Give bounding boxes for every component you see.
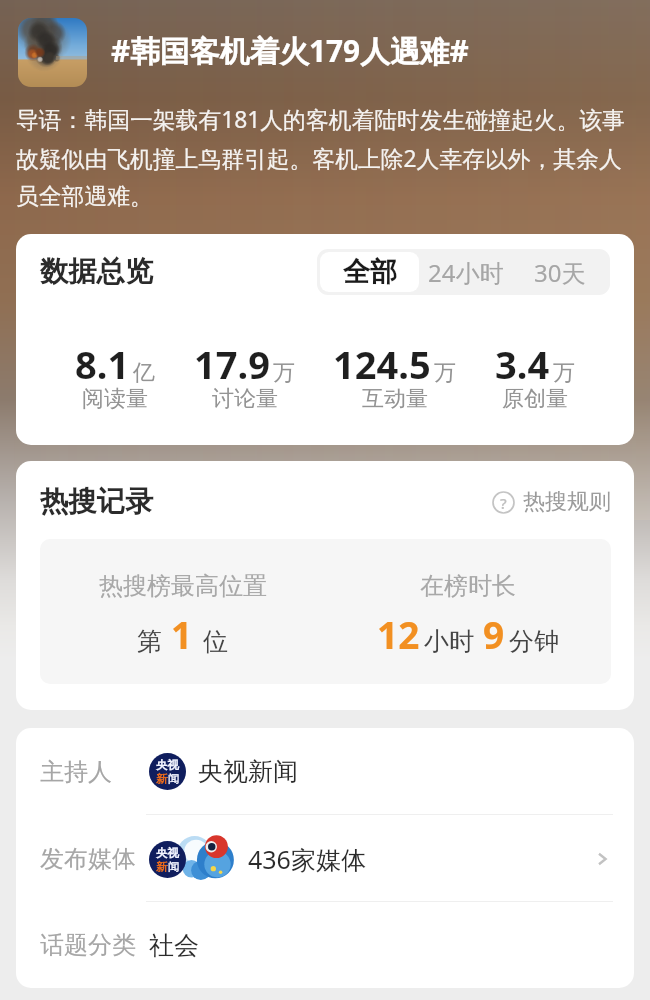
- staticText: 17.9: [194, 338, 270, 390]
- staticText: 9: [483, 609, 505, 659]
- staticText: 互动量: [362, 385, 428, 413]
- staticText: 12: [377, 609, 420, 659]
- other: More: [592, 849, 612, 869]
- button[interactable]: 话题分类: [16, 902, 634, 988]
- staticText: 30天: [534, 256, 586, 289]
- staticText: 8.1: [75, 338, 130, 390]
- staticText: 导语：韩国一架载有181人的客机着陆时发生碰撞起火。该事故疑似由飞机撞上鸟群引起…: [16, 104, 634, 210]
- button[interactable]: 主持人: [16, 728, 634, 815]
- staticText: 第: [137, 626, 162, 657]
- staticText: ?: [500, 493, 507, 513]
- staticText: 全部: [343, 255, 397, 289]
- staticText: 124.5: [333, 338, 431, 390]
- staticText: 亿: [133, 359, 155, 387]
- staticText: 原创量: [502, 385, 568, 413]
- button[interactable]: 30天: [513, 252, 607, 292]
- button[interactable]: 全部: [320, 252, 419, 292]
- staticText: 热搜规则: [523, 488, 611, 516]
- staticText: 小时: [424, 626, 474, 657]
- staticText: 阅读量: [82, 385, 148, 413]
- staticText: 分钟: [509, 626, 559, 657]
- staticText: 发布媒体: [40, 844, 136, 874]
- staticText: 万: [434, 359, 456, 387]
- staticText: 位: [203, 626, 228, 657]
- staticText: 万: [553, 359, 575, 387]
- button[interactable]: 发布媒体: [16, 815, 634, 902]
- staticText: 热搜榜最高位置: [99, 571, 267, 601]
- button[interactable]: ?: [492, 488, 611, 516]
- staticText: 社会: [149, 930, 199, 961]
- staticText: 在榜时长: [420, 571, 516, 601]
- staticText: 热搜记录: [40, 484, 154, 520]
- staticText: 1: [171, 609, 193, 659]
- staticText: 央视: [156, 846, 179, 860]
- staticText: 数据总览: [40, 254, 154, 290]
- button[interactable]: 24小时: [419, 252, 513, 292]
- staticText: 万: [273, 359, 295, 387]
- staticText: 央视新闻: [198, 756, 298, 787]
- staticText: 新闻: [156, 772, 179, 786]
- staticText: 436家媒体: [248, 842, 366, 876]
- staticText: #韩国客机着火179人遇难#: [111, 30, 469, 71]
- staticText: 新闻: [156, 860, 179, 874]
- staticText: 讨论量: [212, 385, 278, 413]
- staticText: 央视: [156, 758, 179, 772]
- staticText: 3.4: [495, 338, 550, 390]
- staticText: 话题分类: [40, 930, 136, 960]
- staticText: 24小时: [428, 256, 504, 289]
- staticText: 主持人: [40, 757, 112, 787]
